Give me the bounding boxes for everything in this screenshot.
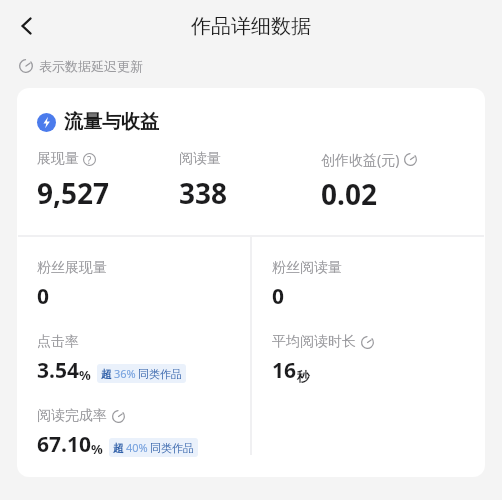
staticText: 3.54 [37,356,79,385]
staticText: 同类作品 [150,441,194,455]
staticText: % [79,366,91,384]
button[interactable]: 平均阅读时长 [252,311,485,385]
staticText: 平均阅读时长 [272,333,356,351]
staticText: 16 [272,356,297,385]
staticText: 创作收益(元) [321,150,400,169]
staticText: 9,527 [37,174,110,212]
button[interactable]: 展现量 [37,150,179,212]
staticText: 流量与收益 [64,110,159,134]
staticText: 同类作品 [138,367,182,381]
button[interactable]: 点击率 [17,311,250,385]
staticText: 0.02 [321,175,377,213]
button[interactable]: Back [6,5,48,47]
button[interactable]: 创作收益(元) [321,150,475,213]
staticText: ? [87,153,92,166]
button[interactable]: 阅读完成率 [17,385,250,459]
staticText: 338 [179,174,228,212]
staticText: 表示数据延迟更新 [39,58,143,74]
staticText: 67.10 [37,430,91,459]
staticText: 36% [114,366,136,381]
staticText: % [91,440,103,458]
staticText: 0 [37,282,50,311]
staticText: 点击率 [37,333,79,351]
button[interactable]: 粉丝展现量 [17,237,250,311]
staticText: 超 [101,367,112,381]
staticText: 0 [272,282,285,311]
button[interactable]: 阅读量 [179,150,321,212]
staticText: 40% [126,440,148,455]
staticText: 阅读完成率 [37,407,107,425]
staticText: 作品详细数据 [191,14,311,39]
staticText: 阅读量 [179,150,221,168]
staticText: 展现量 [37,150,79,168]
staticText: 粉丝展现量 [37,259,107,277]
staticText: 秒 [297,368,310,384]
button[interactable]: 粉丝阅读量 [252,237,485,311]
staticText: 粉丝阅读量 [272,259,342,277]
staticText: 超 [113,441,124,455]
